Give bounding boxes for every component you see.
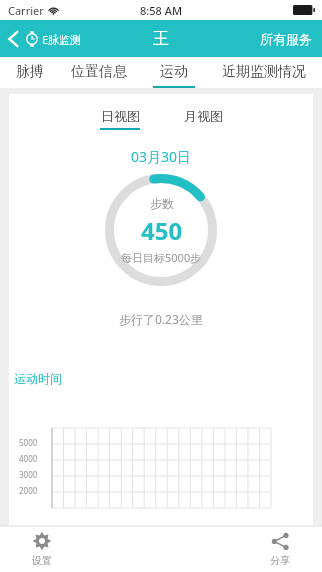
staticText: 每日目标5000步 bbox=[121, 250, 202, 265]
button[interactable]: 位置信息 bbox=[65, 57, 133, 88]
staticText: 8:58 AM bbox=[140, 3, 183, 18]
staticText: 所有服务 bbox=[260, 31, 312, 47]
staticText: 设置 bbox=[32, 554, 52, 567]
staticText: 运动 bbox=[160, 63, 188, 81]
staticText: 王 bbox=[153, 29, 169, 49]
staticText: E脉监测 bbox=[42, 32, 82, 47]
button[interactable]: 日视图 bbox=[96, 108, 144, 130]
staticText: 步行了0.23公里 bbox=[119, 311, 203, 327]
staticText: 分享 bbox=[270, 554, 290, 567]
button[interactable]: 设置 bbox=[28, 527, 56, 571]
button[interactable]: 近期监测情况 bbox=[216, 57, 312, 88]
staticText: 月视图 bbox=[184, 108, 223, 124]
staticText: 2000 bbox=[19, 485, 38, 496]
button[interactable]: 分享 bbox=[266, 527, 294, 571]
staticText: 脉搏 bbox=[16, 63, 44, 81]
button[interactable]: 运动 bbox=[147, 57, 201, 88]
button[interactable]: 脉搏 bbox=[10, 57, 50, 88]
staticText: 4000 bbox=[19, 453, 38, 464]
button[interactable]: 月视图 bbox=[180, 108, 227, 130]
staticText: 运动时间 bbox=[14, 371, 62, 386]
staticText: 近期监测情况 bbox=[222, 63, 306, 81]
staticText: 03月30日 bbox=[131, 147, 192, 166]
staticText: 3000 bbox=[19, 469, 38, 480]
staticText: 日视图 bbox=[101, 108, 140, 124]
staticText: 步数 bbox=[150, 196, 174, 211]
staticText: 450 bbox=[141, 214, 183, 247]
button[interactable]: 所有服务 bbox=[250, 25, 322, 53]
staticText: Carrier bbox=[8, 3, 44, 18]
staticText: 位置信息 bbox=[71, 63, 127, 81]
button[interactable]: Back bbox=[0, 26, 90, 52]
staticText: 5000 bbox=[19, 437, 38, 448]
